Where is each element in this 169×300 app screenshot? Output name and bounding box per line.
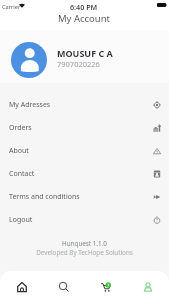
staticText: Developed By TecHope Solutions [36, 248, 133, 257]
button[interactable]: About [0, 139, 169, 162]
staticText: 6:40 PM [70, 2, 98, 12]
staticText: Contact [9, 169, 35, 179]
staticText: Hunquest 1.1.0 [62, 239, 107, 248]
staticText: Carrier [2, 3, 21, 11]
staticText: My Adresses [9, 100, 51, 110]
other: About [153, 147, 161, 155]
button[interactable]: Home [0, 271, 43, 300]
button[interactable]: Profile [127, 271, 169, 300]
button[interactable]: Orders [0, 116, 169, 139]
staticText: My Account [58, 12, 111, 25]
other: Orders [153, 124, 161, 132]
button[interactable]: Search [43, 271, 85, 300]
staticText: About [9, 146, 29, 156]
other: Terms [153, 193, 161, 201]
other: Contact [153, 170, 161, 178]
button[interactable]: Logout [0, 208, 169, 231]
staticText: MOUSUF C A [57, 47, 113, 59]
staticText: 7907020226 [57, 59, 100, 69]
button[interactable]: Contact [0, 162, 169, 185]
staticText: Logout [9, 215, 33, 225]
button[interactable]: Terms and conditions [0, 185, 169, 208]
other: Logout [153, 216, 161, 224]
button[interactable]: My Adresses [0, 93, 169, 116]
staticText: Terms and conditions [9, 192, 80, 202]
button[interactable]: Cart [85, 271, 127, 300]
other: Location [153, 101, 161, 109]
staticText: Orders [9, 123, 32, 133]
